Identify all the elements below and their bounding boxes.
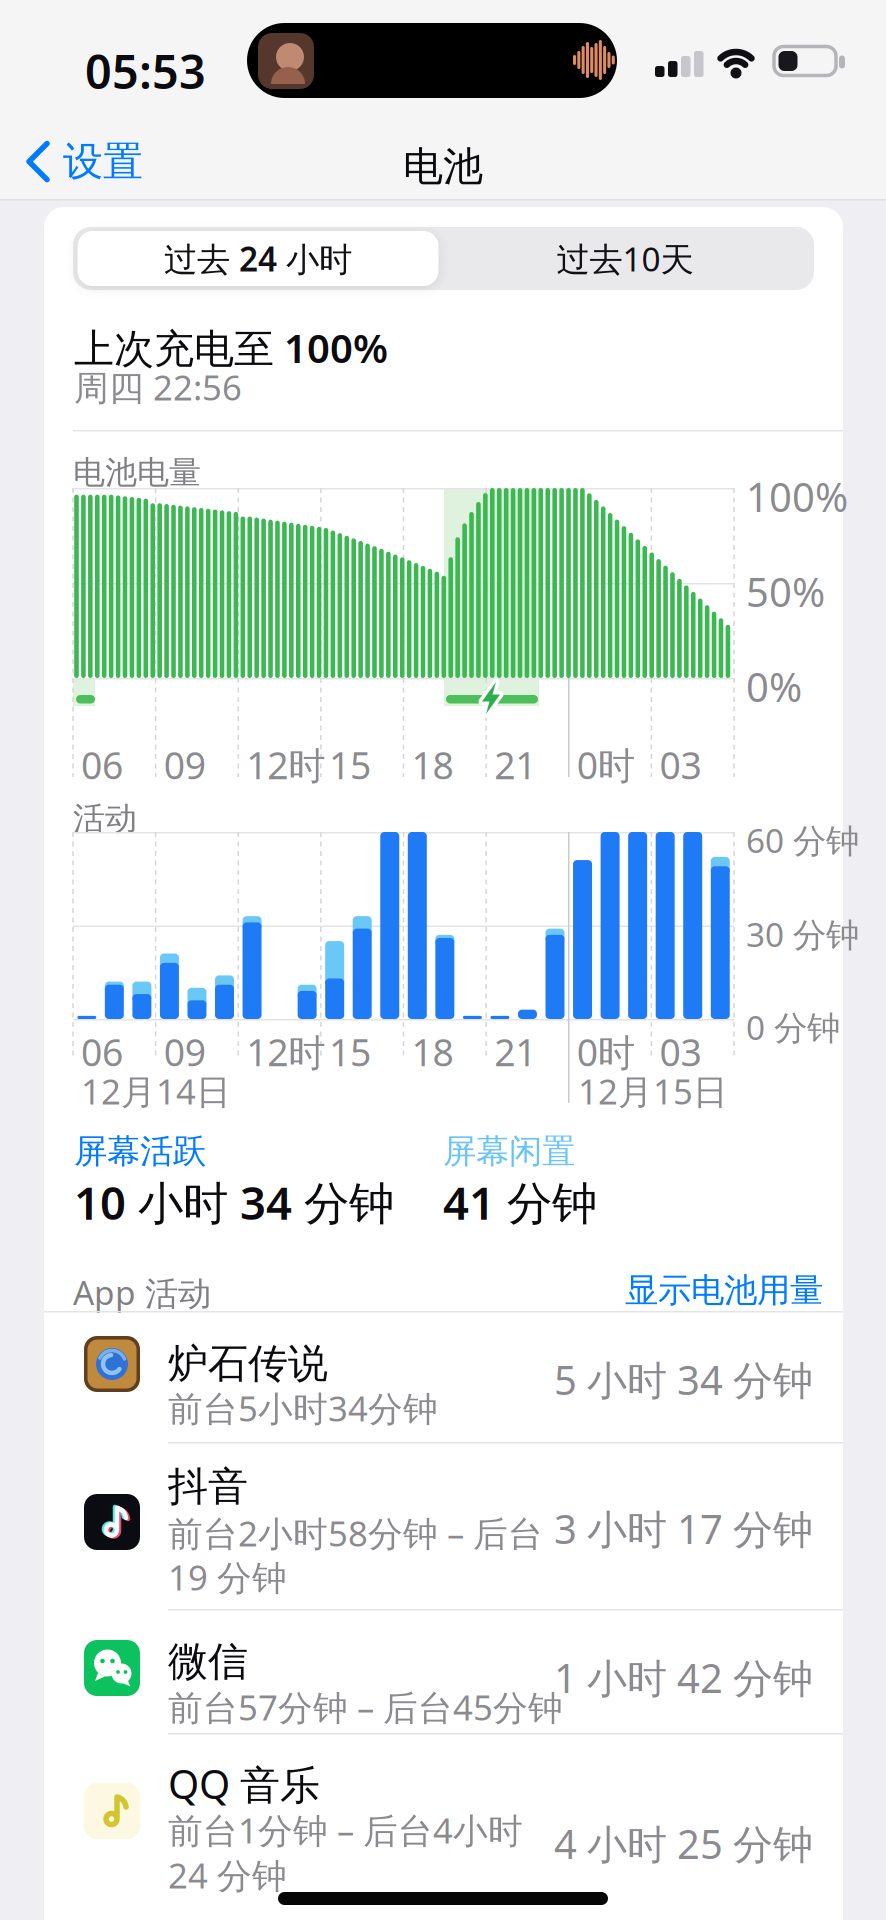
staticText: 10 小时 34 分钟 (74, 1172, 394, 1232)
staticText: 设置 (63, 137, 143, 186)
staticText: 0% (746, 660, 802, 713)
staticText: 100% (746, 470, 848, 523)
staticText: 03 (659, 740, 701, 790)
staticText: 21 (494, 1027, 536, 1077)
staticText: 03 (659, 1027, 701, 1077)
staticText: 18 (411, 1027, 453, 1077)
staticText: 15 (329, 1027, 371, 1077)
staticText: 1 小时 42 分钟 (554, 1651, 813, 1704)
staticText: 41 分钟 (443, 1172, 597, 1232)
staticText: 屏幕闲置 (443, 1131, 575, 1172)
staticText: 18 (411, 740, 453, 790)
staticText: 3 小时 17 分钟 (554, 1502, 813, 1555)
staticText: 0 分钟 (746, 1005, 840, 1049)
staticText: 炉石传说 (168, 1339, 328, 1388)
staticText: 09 (164, 740, 206, 790)
staticText: 4 小时 25 分钟 (554, 1817, 813, 1870)
staticText: App 活动 (73, 1270, 211, 1314)
staticText: QQ 音乐 (168, 1757, 320, 1810)
staticText: 15 (329, 740, 371, 790)
staticText: 5 小时 34 分钟 (554, 1353, 813, 1406)
staticText: 0时 (577, 1027, 635, 1077)
staticText: 上次充电至 100% (74, 321, 388, 374)
button[interactable]: 过去10天 (440, 231, 810, 286)
staticText: 60 分钟 (746, 818, 859, 862)
staticText: 05:53 (85, 40, 206, 102)
staticText: 12月14日 (81, 1068, 231, 1114)
button[interactable]: 设置 (25, 137, 143, 186)
button[interactable]: 过去 24 小时 (77, 231, 438, 286)
staticText: 微信 (168, 1637, 248, 1686)
staticText: 电池 (403, 142, 483, 191)
staticText: 屏幕活跃 (74, 1131, 206, 1172)
staticText: 前台1分钟 – 后台4小时 (168, 1807, 523, 1853)
staticText: 显示电池用量 (625, 1270, 823, 1311)
staticText: 抖音 (168, 1462, 248, 1511)
staticText: 24 分钟 (168, 1852, 287, 1898)
staticText: 周四 22:56 (74, 364, 242, 410)
button[interactable]: 炉石传说 (44, 1312, 843, 1442)
staticText: 30 分钟 (746, 912, 859, 956)
staticText: 活动 (73, 799, 137, 838)
staticText: 06 (81, 1027, 123, 1077)
button[interactable]: 微信 (44, 1610, 843, 1734)
staticText: 21 (494, 740, 536, 790)
staticText: 06 (81, 740, 123, 790)
staticText: 过去 24 小时 (164, 236, 352, 281)
staticText: 19 分钟 (168, 1554, 287, 1600)
staticText: 前台2小时58分钟 – 后台 (168, 1510, 543, 1556)
staticText: 12月15日 (578, 1068, 728, 1114)
button[interactable]: QQ 音乐 (44, 1734, 843, 1920)
staticText: 过去10天 (556, 236, 693, 281)
staticText: 电池电量 (73, 453, 201, 492)
staticText: 12时 (246, 1027, 325, 1077)
staticText: 0时 (577, 740, 635, 790)
button[interactable]: 显示电池用量 (523, 1270, 823, 1311)
staticText: 50% (746, 565, 825, 618)
staticText: 前台5小时34分钟 (168, 1385, 438, 1431)
staticText: 前台57分钟 – 后台45分钟 (168, 1684, 563, 1730)
button[interactable]: 抖音 (44, 1443, 843, 1609)
staticText: 12时 (246, 740, 325, 790)
staticText: 09 (164, 1027, 206, 1077)
